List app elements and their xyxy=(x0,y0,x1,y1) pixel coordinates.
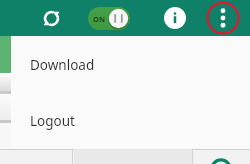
button[interactable]: More options xyxy=(206,1,240,35)
staticText: Download xyxy=(30,56,95,74)
button[interactable]: Download xyxy=(11,36,250,94)
staticText: Logout xyxy=(30,112,75,130)
button[interactable]: Info xyxy=(160,3,190,33)
staticText: ON xyxy=(93,14,106,24)
button[interactable]: Sync xyxy=(36,3,66,33)
button[interactable]: ON xyxy=(88,7,130,30)
button[interactable]: Logout xyxy=(11,94,250,148)
